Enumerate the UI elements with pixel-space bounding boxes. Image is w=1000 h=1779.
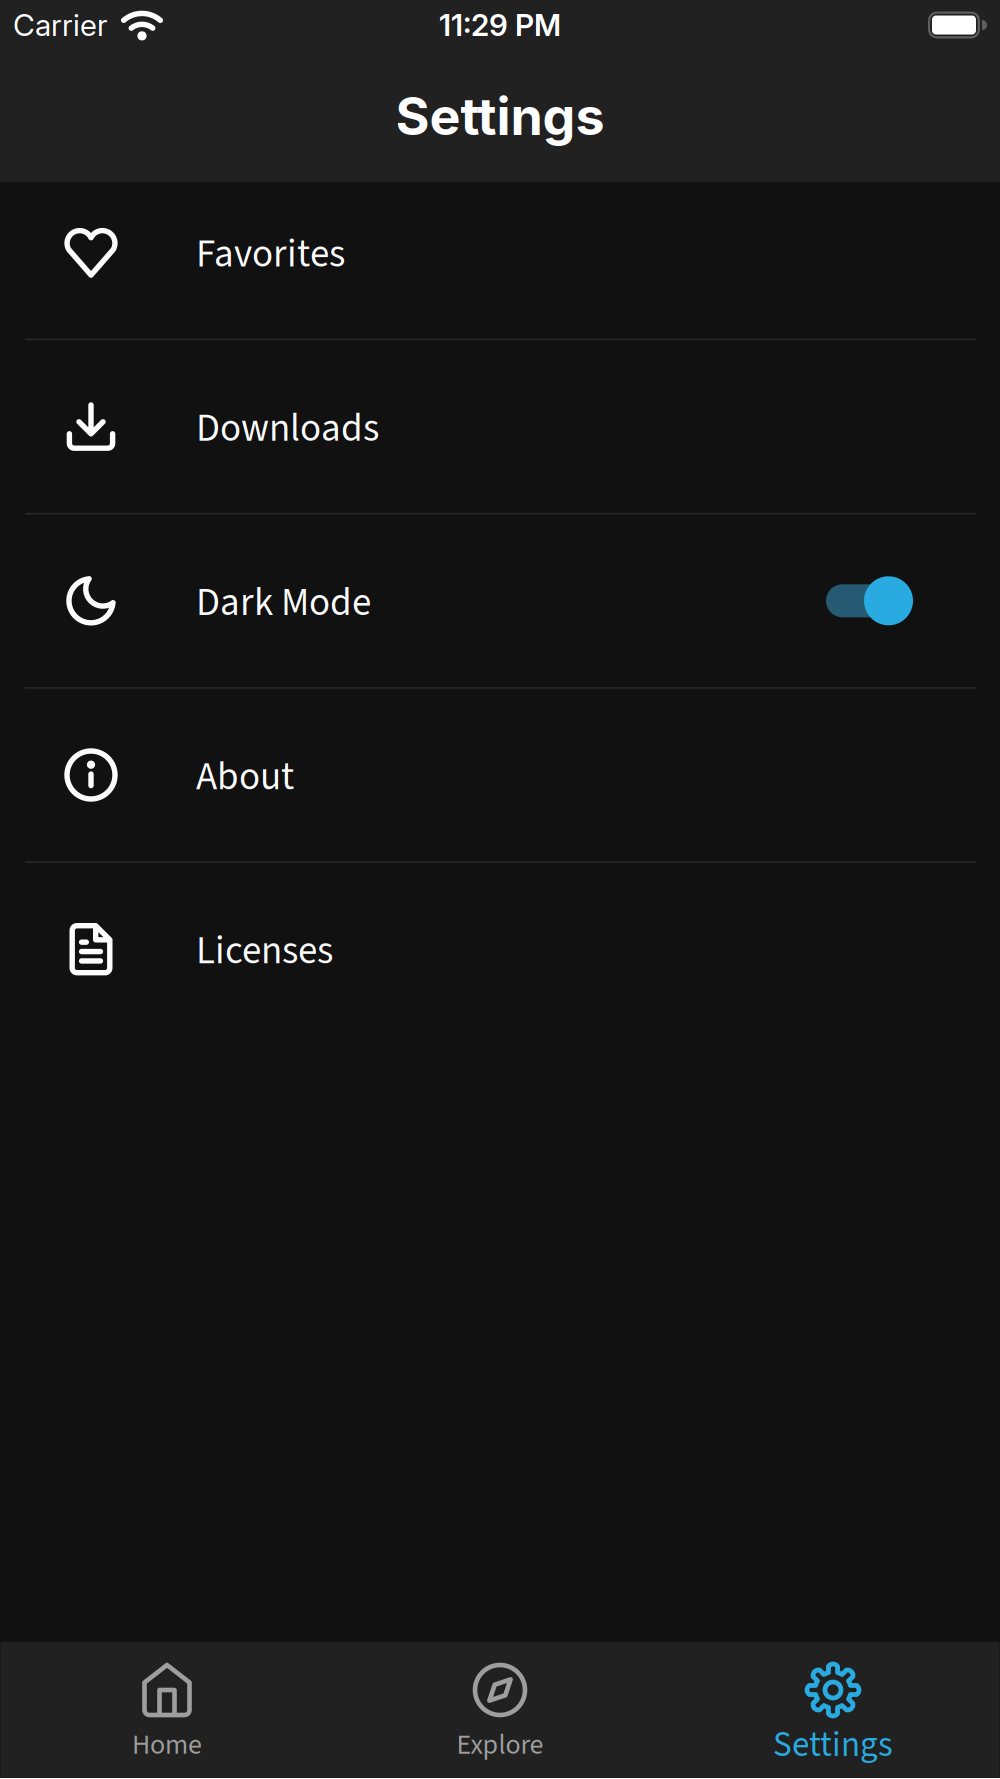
- button[interactable]: Favorites: [0, 166, 1000, 339]
- staticText: About: [196, 749, 294, 805]
- button[interactable]: Explore: [333, 1642, 666, 1778]
- staticText: Dark Mode: [196, 575, 371, 630]
- staticText: Favorites: [196, 227, 345, 282]
- button[interactable]: Licenses: [0, 863, 1000, 1036]
- staticText: Home: [132, 1725, 202, 1765]
- staticText: Settings: [773, 1720, 893, 1770]
- button[interactable]: Home: [0, 1642, 333, 1778]
- staticText: 11:29 PM: [439, 7, 561, 43]
- staticText: Settings: [395, 84, 604, 147]
- staticText: Downloads: [196, 401, 379, 456]
- staticText: Explore: [456, 1725, 543, 1765]
- button[interactable]: Settings: [666, 1642, 999, 1778]
- button[interactable]: Dark Mode: [825, 576, 913, 625]
- staticText: Licenses: [196, 923, 333, 979]
- button[interactable]: About: [0, 689, 1000, 861]
- button[interactable]: Downloads: [0, 340, 1000, 513]
- staticText: Carrier: [13, 7, 108, 43]
